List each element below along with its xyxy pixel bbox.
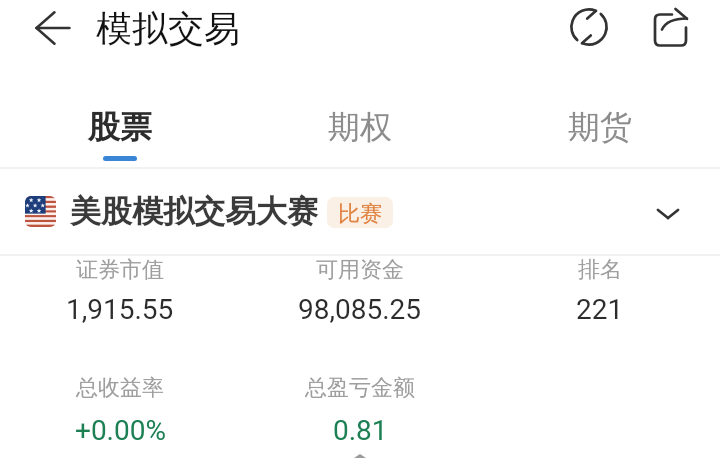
button[interactable]: Back: [23, 0, 83, 55]
staticText: 总盈亏金额: [305, 374, 415, 402]
staticText: 期货: [568, 107, 632, 147]
staticText: 模拟交易: [96, 6, 240, 51]
staticText: 排名: [578, 256, 622, 284]
staticText: 比赛: [338, 200, 382, 228]
staticText: 股票: [88, 107, 152, 147]
staticText: 美股模拟交易大赛: [70, 192, 318, 231]
staticText: 可用资金: [316, 256, 404, 284]
button[interactable]: 期权: [240, 86, 480, 156]
button[interactable]: 证券市值: [0, 256, 240, 326]
button[interactable]: 总收益率: [0, 374, 240, 447]
staticText: 期权: [328, 107, 392, 147]
button[interactable]: 期货: [480, 86, 720, 156]
button[interactable]: 可用资金: [240, 256, 480, 326]
button[interactable]: 排名: [480, 256, 720, 326]
staticText: +0.00%: [75, 414, 166, 447]
button[interactable]: 股票: [0, 86, 240, 161]
button[interactable]: 总盈亏金额: [240, 374, 480, 447]
button[interactable]: Refresh: [561, 0, 617, 54]
button[interactable]: Share: [641, 0, 697, 54]
staticText: 证券市值: [76, 256, 164, 284]
staticText: 0.81: [333, 414, 388, 447]
staticText: 总收益率: [76, 374, 164, 402]
button[interactable]: Expand contest details: [638, 181, 698, 241]
staticText: 98,085.25: [298, 293, 422, 326]
staticText: 221: [576, 293, 624, 326]
button[interactable]: 美股模拟交易大赛: [0, 169, 720, 253]
staticText: 1,915.55: [66, 293, 174, 326]
